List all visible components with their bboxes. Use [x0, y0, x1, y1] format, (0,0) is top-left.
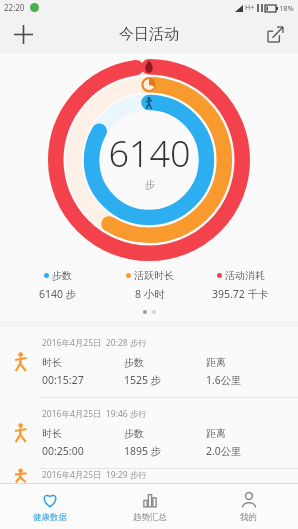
staticText: H+	[245, 3, 255, 13]
staticText: 步数	[124, 356, 144, 369]
staticText: 时长	[42, 356, 62, 369]
button[interactable]: Share	[260, 19, 290, 49]
staticText: 活跃时长	[134, 269, 174, 282]
button[interactable]: 趋势汇总	[100, 484, 199, 529]
staticText: 今日活动	[119, 25, 179, 44]
staticText: 00:25:00	[42, 444, 84, 458]
button[interactable]: 2016年4月25日 19:29 步行	[0, 469, 298, 483]
staticText: 2016年4月25日 20:28 步行	[42, 337, 147, 349]
staticText: 1.6公里	[206, 373, 242, 387]
button[interactable]: Add	[8, 19, 38, 49]
staticText: 6140	[108, 129, 191, 178]
staticText: 健康数据	[33, 512, 67, 523]
staticText: 距离	[206, 356, 226, 369]
button[interactable]: 我的	[199, 484, 298, 529]
staticText: 趋势汇总	[133, 512, 167, 523]
staticText: 活动消耗	[225, 269, 265, 282]
staticText: 18%	[279, 3, 294, 13]
staticText: 2016年4月25日 19:46 步行	[42, 408, 147, 420]
staticText: 2016年4月25日 19:29 步行	[42, 469, 147, 481]
staticText: 6140 步	[39, 287, 77, 301]
staticText: 距离	[206, 427, 226, 440]
staticText: 步数	[124, 427, 144, 440]
staticText: 步	[145, 178, 155, 191]
staticText: 22:20	[4, 2, 25, 13]
staticText: 8 小时	[135, 287, 165, 301]
staticText: 1895 步	[124, 444, 162, 458]
staticText: 步数	[52, 269, 72, 282]
button[interactable]: 2016年4月25日 20:28 步行	[0, 327, 298, 397]
staticText: 00:15:27	[42, 373, 84, 387]
button[interactable]: 健康数据	[0, 484, 100, 529]
staticText: 2.0公里	[206, 444, 242, 458]
button[interactable]: 2016年4月25日 19:46 步行	[0, 398, 298, 468]
staticText: 时长	[42, 427, 62, 440]
staticText: 我的	[240, 512, 257, 523]
staticText: 1525 步	[124, 373, 162, 387]
staticText: 395.72 千卡	[212, 287, 269, 301]
